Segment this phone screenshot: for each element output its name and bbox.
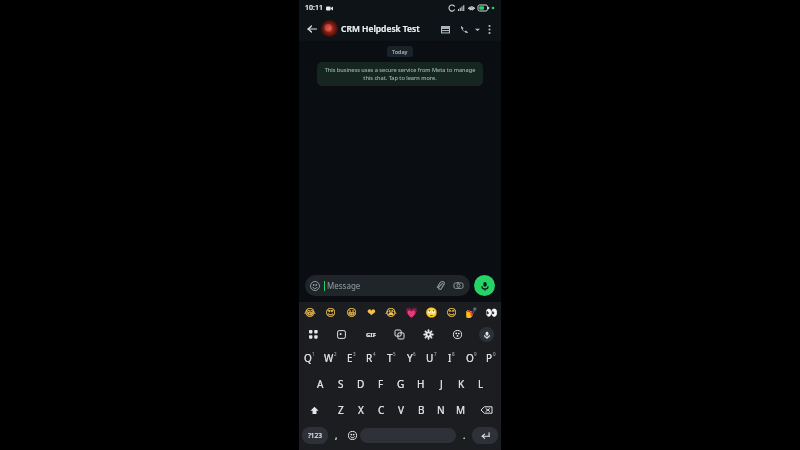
button[interactable]: Camera (452, 279, 465, 292)
button[interactable]: Z (330, 397, 351, 423)
staticText: 🙄 (425, 307, 438, 319)
staticText: 😂 (304, 307, 316, 319)
button[interactable]: H (411, 371, 431, 397)
button[interactable]: 😂 (299, 302, 320, 324)
staticText: O (466, 351, 474, 365)
button[interactable]: P (481, 345, 501, 371)
button[interactable]: Today (392, 48, 408, 55)
button[interactable]: ?123 (302, 427, 328, 444)
staticText: ❤️ (367, 307, 376, 319)
button[interactable]: Message (310, 275, 465, 296)
button[interactable]: Voice message (474, 275, 495, 296)
button[interactable]: E (341, 345, 361, 371)
button[interactable]: . (456, 423, 472, 447)
button[interactable]: Space (360, 428, 456, 443)
button[interactable]: X (351, 397, 371, 423)
button[interactable]: V (391, 397, 411, 423)
staticText: P (486, 351, 493, 365)
button[interactable]: GIF (356, 324, 385, 345)
staticText: N (437, 403, 445, 417)
staticText: X (358, 403, 364, 417)
staticText: 10:11 (305, 3, 323, 13)
button[interactable]: 😊 (441, 302, 461, 324)
button[interactable]: Y (401, 345, 421, 371)
staticText: I (448, 351, 452, 365)
staticText: A (317, 377, 324, 391)
button[interactable]: Call (456, 21, 472, 37)
button[interactable]: Emoji (344, 423, 360, 447)
button[interactable]: Apps (299, 324, 327, 345)
button[interactable]: More options (482, 22, 496, 36)
staticText: . (463, 429, 466, 441)
button[interactable]: Shift (299, 397, 330, 423)
button[interactable]: C (371, 397, 391, 423)
button[interactable]: 🙄 (421, 302, 441, 324)
staticText: 😀 (346, 307, 357, 319)
button[interactable]: W (320, 345, 341, 371)
button[interactable]: 😀 (341, 302, 361, 324)
button[interactable]: S (331, 371, 351, 397)
button[interactable]: Translate (385, 324, 414, 345)
staticText: C (378, 403, 385, 417)
button[interactable]: U (421, 345, 441, 371)
staticText: B (418, 403, 425, 417)
button[interactable]: Business catalog (437, 21, 453, 37)
button[interactable]: F (371, 371, 391, 397)
button[interactable]: Enter (472, 427, 498, 444)
staticText: G (397, 377, 405, 391)
button[interactable]: Back (304, 21, 320, 37)
staticText: 👀 (485, 307, 498, 319)
button[interactable]: Call options (472, 24, 482, 34)
button[interactable]: O (461, 345, 481, 371)
button[interactable]: L (471, 371, 491, 397)
staticText: 😊 (446, 307, 457, 319)
button[interactable]: T (381, 345, 401, 371)
button[interactable]: R (361, 345, 381, 371)
button[interactable]: I (441, 345, 461, 371)
button[interactable]: ❤️ (361, 302, 381, 324)
button[interactable]: This business uses a secure service from… (323, 66, 477, 82)
staticText: Message (327, 280, 361, 291)
staticText: , (335, 429, 338, 441)
button[interactable]: G (391, 371, 411, 397)
staticText: W (324, 351, 334, 365)
staticText: K (458, 377, 465, 391)
staticText: 0 (493, 351, 496, 357)
button[interactable] (321, 20, 338, 37)
button[interactable]: 😍 (320, 302, 341, 324)
staticText: 3 (353, 351, 356, 357)
staticText: GIF (366, 331, 376, 339)
staticText: 😍 (325, 307, 336, 319)
button[interactable]: 💗 (401, 302, 421, 324)
button[interactable]: Q (299, 345, 320, 371)
button[interactable]: J (431, 371, 451, 397)
button[interactable]: B (411, 397, 431, 423)
button[interactable]: K (451, 371, 471, 397)
button[interactable]: 👀 (481, 302, 501, 324)
staticText: L (478, 377, 484, 391)
button[interactable]: Stickers (327, 324, 356, 345)
button[interactable]: 💅 (461, 302, 481, 324)
staticText: Today (392, 48, 408, 55)
staticText: T (387, 351, 393, 365)
button[interactable]: CRM Helpdesk Test (341, 23, 437, 35)
button[interactable]: Backspace (471, 397, 501, 423)
button[interactable]: N (431, 397, 451, 423)
button[interactable]: M (451, 397, 471, 423)
staticText: 💅 (465, 307, 478, 319)
button[interactable]: D (351, 371, 371, 397)
button[interactable]: Themes (443, 324, 472, 345)
staticText: E (347, 351, 353, 365)
staticText: Q (304, 351, 312, 365)
staticText: S (338, 377, 344, 391)
button[interactable]: , (328, 423, 344, 447)
staticText: R (366, 351, 373, 365)
staticText: 5 (393, 351, 396, 357)
button[interactable]: 😭 (381, 302, 401, 324)
button[interactable]: Attach (434, 279, 447, 292)
button[interactable]: Settings (414, 324, 443, 345)
button[interactable]: Voice input (472, 324, 501, 345)
staticText: 8 (452, 351, 455, 357)
button[interactable]: A (310, 371, 331, 397)
staticText: F (378, 377, 384, 391)
